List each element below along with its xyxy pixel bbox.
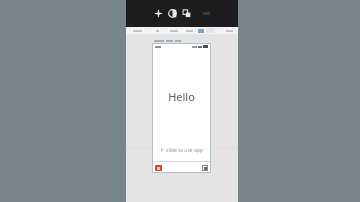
button[interactable]: Layers — [182, 9, 191, 18]
button[interactable]: Contrast — [168, 9, 177, 18]
button[interactable]: Toggle — [202, 165, 208, 171]
button[interactable]: App icon — [155, 165, 162, 171]
button[interactable]: Move tool — [154, 9, 163, 18]
other: Slide — [160, 148, 164, 152]
staticText: slide to use app — [166, 147, 203, 154]
button[interactable]: Slide — [152, 143, 211, 157]
button[interactable]: Hello — [152, 43, 211, 173]
staticText: Hello — [168, 89, 195, 104]
